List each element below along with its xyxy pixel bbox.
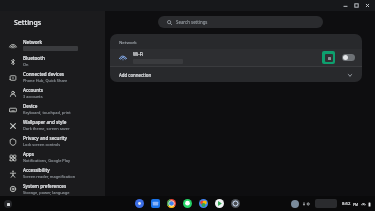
button[interactable]: Messages — [182, 198, 193, 209]
button[interactable]: Accessibility — [0, 165, 105, 181]
staticText: Lock screen controls — [23, 142, 61, 147]
button[interactable]: Privacy and security — [0, 133, 105, 149]
button[interactable]: Connected devices — [0, 69, 105, 85]
button[interactable]: Bluetooth — [0, 53, 105, 69]
button[interactable]: Apps — [0, 149, 105, 165]
button[interactable]: Settings — [230, 198, 241, 209]
staticText: Wallpaper and style — [23, 119, 67, 125]
staticText: Add connection — [119, 72, 347, 78]
staticText: Keyboard, touchpad, print — [23, 110, 71, 115]
staticText: 8:52 — [342, 201, 351, 207]
button[interactable]: Status area — [340, 201, 373, 207]
button[interactable]: Wi-Fi details — [322, 51, 335, 64]
button[interactable]: Files — [150, 198, 161, 209]
staticText: Accounts — [23, 87, 44, 93]
button[interactable]: Launcher — [4, 200, 12, 208]
button[interactable]: Add connection — [110, 67, 362, 82]
button[interactable]: Minimize — [341, 1, 350, 10]
staticText: On — [23, 62, 29, 67]
staticText: Storage, power, language — [23, 190, 70, 195]
staticText: Privacy and security — [23, 135, 67, 141]
button[interactable]: Close — [363, 1, 372, 10]
button[interactable]: Accounts — [0, 85, 105, 101]
staticText: Device — [23, 103, 38, 109]
staticText: 3 accounts — [23, 94, 43, 99]
staticText: Apps — [23, 151, 34, 157]
staticText: Notifications, Google Play — [23, 158, 70, 163]
staticText: Search settings — [176, 19, 208, 25]
button[interactable]: Wi-Fi — [110, 49, 362, 66]
staticText: Dark theme, screen saver — [23, 126, 70, 131]
button[interactable]: Photos — [198, 198, 209, 209]
button[interactable]: Device — [0, 101, 105, 117]
staticText: System preferences — [23, 183, 67, 189]
button[interactable]: Search settings — [158, 16, 323, 28]
button[interactable]: Play Store — [214, 198, 225, 209]
staticText: Screen reader, magnification — [23, 174, 76, 179]
staticText: Settings — [14, 18, 42, 28]
staticText: Phone Hub, Quick Share — [23, 78, 68, 83]
button[interactable]: Maximize — [352, 1, 361, 10]
button[interactable]: Wi-Fi toggle — [342, 54, 355, 61]
button[interactable]: Wallpaper and style — [0, 117, 105, 133]
button[interactable]: Profile — [291, 200, 299, 208]
staticText: Bluetooth — [23, 55, 45, 61]
button[interactable]: Network — [0, 37, 105, 53]
staticText: Wi-Fi — [133, 51, 144, 57]
button[interactable]: System preferences — [0, 181, 105, 196]
button[interactable]: Launcher app — [134, 198, 145, 209]
staticText: PM — [353, 202, 359, 207]
staticText: Accessibility — [23, 167, 50, 173]
staticText: Network — [119, 39, 137, 45]
button[interactable]: Chrome — [166, 198, 177, 209]
staticText: Network — [23, 39, 42, 45]
staticText: Connected devices — [23, 71, 64, 77]
button[interactable]: Downloads — [302, 201, 312, 207]
